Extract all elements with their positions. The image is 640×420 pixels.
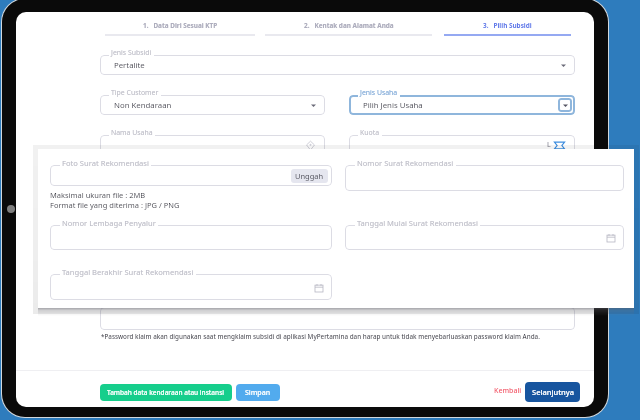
staticText: Maksimal ukuran file : 2MB [50, 190, 146, 200]
staticText: 2. Kentak dan Alamat Anda [304, 21, 394, 30]
staticText: Pertalite [114, 60, 145, 71]
button[interactable]: Open Jenis Usaha list [558, 98, 572, 112]
button[interactable]: Open Tipe Customer list [308, 100, 319, 111]
button[interactable] [349, 215, 575, 235]
button[interactable] [349, 175, 575, 195]
button[interactable]: Unggah [291, 169, 328, 183]
button[interactable] [100, 135, 325, 155]
staticText: Jenis Subsidi [111, 48, 152, 57]
staticText: 1. Data Diri Sesuai KTP [143, 21, 218, 30]
button[interactable] [100, 215, 325, 235]
staticText: Unggah [295, 171, 324, 181]
button[interactable] [100, 175, 325, 195]
staticText: Jenis Usaha [360, 88, 398, 97]
button[interactable] [100, 255, 325, 275]
staticText: Nomor Surat Rekomendasi [357, 158, 454, 168]
staticText: Non Kendaraan [114, 100, 172, 111]
button[interactable]: 1. Data Diri Sesuai KTP [105, 16, 255, 36]
button[interactable] [100, 307, 575, 330]
staticText: Tambah data kendaraan atau instansi [107, 388, 225, 397]
button[interactable]: Quota ticket [553, 139, 566, 152]
button[interactable]: 3. Pilih Subsidi [444, 16, 571, 36]
button[interactable] [50, 165, 332, 186]
button[interactable] [349, 135, 575, 155]
staticText: L [547, 140, 551, 150]
staticText: Kembali [494, 386, 522, 396]
staticText: Format file yang diterima : JPG / PNG [50, 200, 180, 210]
staticText: Simpan [245, 388, 271, 398]
button[interactable] [50, 274, 332, 300]
button[interactable] [345, 165, 624, 191]
staticText: Kuota [360, 128, 380, 137]
button[interactable]: Pick date [605, 232, 616, 243]
staticText: Nomor Lembaga Penyalur [62, 218, 156, 228]
staticText: Nama Usaha [111, 128, 153, 137]
button[interactable] [345, 225, 624, 250]
button[interactable] [100, 55, 575, 75]
button[interactable] [349, 95, 575, 115]
button[interactable] [100, 95, 325, 115]
button[interactable]: Open Jenis Subsidi list [558, 60, 569, 71]
button[interactable]: Pick location [305, 140, 316, 151]
button[interactable]: Tambah data kendaraan atau instansi [100, 384, 232, 401]
staticText: Tanggal Mulai Surat Rekomendasi [357, 218, 478, 228]
staticText: Foto Surat Rekomendasi [62, 158, 149, 168]
button[interactable]: Kembali [490, 383, 526, 399]
button[interactable]: Simpan [236, 384, 280, 401]
staticText: Selanjutnya [532, 387, 574, 397]
button[interactable] [50, 225, 332, 250]
staticText: Tanggal Berakhir Surat Rekomendasi [62, 267, 194, 277]
button[interactable]: Pick date [313, 282, 324, 293]
staticText: Tipe Customer [111, 88, 159, 97]
staticText: 3. Pilih Subsidi [483, 21, 532, 30]
staticText: Pilih Jenis Usaha [363, 100, 423, 111]
button[interactable]: 2. Kentak dan Alamat Anda [265, 16, 432, 36]
button[interactable]: Selanjutnya [525, 382, 580, 402]
staticText: *Password klaim akan digunakan saat meng… [101, 332, 540, 341]
